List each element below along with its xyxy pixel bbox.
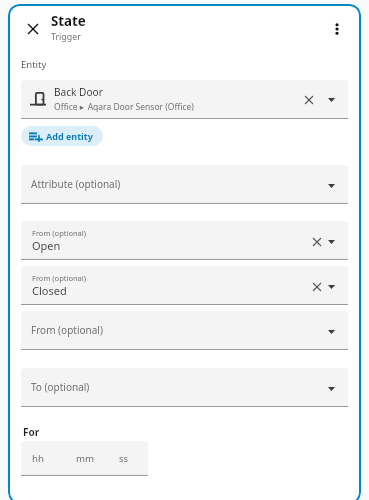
button[interactable]: Clear From (optional) — [309, 234, 324, 249]
staticText: Office ▸ Aqara Door Sensor (Office) — [54, 101, 194, 113]
button[interactable]: From (optional) — [21, 221, 348, 260]
staticText: From (optional) — [32, 273, 86, 283]
button[interactable]: From (optional) — [21, 311, 348, 350]
staticText: Add entity — [46, 130, 93, 142]
button[interactable]: Close — [21, 17, 45, 41]
button[interactable]: Open entity options — [324, 92, 339, 107]
staticText: mm — [76, 452, 94, 465]
button[interactable]: Open From (optional) options — [324, 234, 339, 249]
staticText: From (optional) — [31, 323, 103, 337]
button[interactable]: To (optional) — [21, 368, 348, 407]
button[interactable]: More options — [326, 18, 348, 40]
button[interactable]: Attribute (optional) — [21, 165, 348, 204]
staticText: Back Door — [54, 85, 103, 99]
staticText: Closed — [32, 283, 67, 298]
staticText: Trigger — [51, 31, 81, 43]
staticText: Attribute (optional) — [31, 177, 121, 191]
staticText: ss — [119, 452, 129, 465]
button[interactable]: Add entity — [21, 126, 103, 146]
staticText: For — [23, 425, 40, 439]
button[interactable]: Open To (optional) options — [324, 381, 339, 396]
staticText: Open — [32, 238, 61, 253]
button[interactable]: Open From (optional) options — [324, 279, 339, 294]
staticText: To (optional) — [31, 380, 90, 394]
button[interactable]: From (optional) — [21, 266, 348, 305]
button[interactable]: Open From (optional) options — [324, 324, 339, 339]
button[interactable]: Back Door — [21, 80, 348, 119]
button[interactable]: Clear From (optional) — [309, 279, 324, 294]
staticText: State — [51, 12, 86, 30]
staticText: From (optional) — [32, 228, 86, 238]
button[interactable]: Clear entity — [301, 92, 316, 107]
button[interactable]: hh — [21, 441, 148, 476]
staticText: Entity — [21, 58, 47, 71]
staticText: hh — [32, 452, 44, 465]
button[interactable]: Open Attribute (optional) options — [324, 178, 339, 193]
